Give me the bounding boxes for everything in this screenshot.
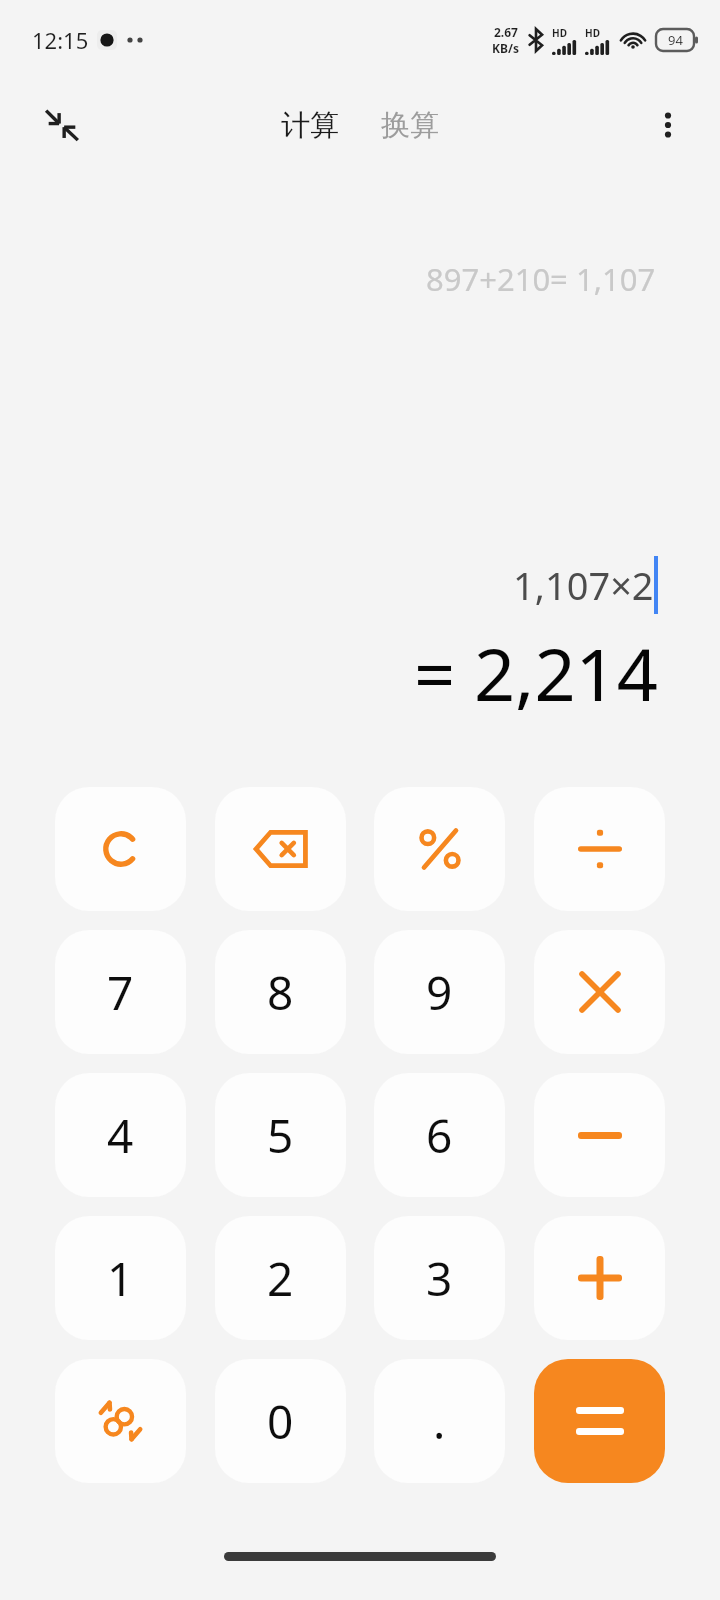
- button[interactable]: 2: [215, 1216, 346, 1340]
- button[interactable]: 3: [374, 1216, 505, 1340]
- button[interactable]: .: [374, 1359, 505, 1483]
- staticText: KB/s: [492, 40, 519, 56]
- button[interactable]: 0: [215, 1359, 346, 1483]
- button[interactable]: Clear: [55, 787, 186, 911]
- staticText: 1: [107, 1247, 134, 1310]
- staticText: 4: [107, 1104, 134, 1167]
- staticText: 5: [267, 1104, 294, 1167]
- staticText: 2.67: [494, 24, 518, 40]
- button[interactable]: Collapse: [30, 93, 94, 157]
- staticText: 9: [426, 961, 453, 1024]
- button[interactable]: 8: [215, 930, 346, 1054]
- button[interactable]: Backspace: [215, 787, 346, 911]
- button[interactable]: 5: [215, 1073, 346, 1197]
- staticText: HD: [585, 26, 600, 40]
- staticText: .: [433, 1390, 446, 1453]
- staticText: 换算: [381, 107, 439, 144]
- staticText: 94: [668, 31, 683, 49]
- button[interactable]: Minus: [534, 1073, 665, 1197]
- staticText: 3: [426, 1247, 453, 1310]
- button[interactable]: 6: [374, 1073, 505, 1197]
- button[interactable]: 7: [55, 930, 186, 1054]
- button[interactable]: More options: [640, 97, 696, 153]
- staticText: 0: [267, 1390, 294, 1453]
- staticText: 计算: [281, 107, 339, 144]
- button[interactable]: 1: [55, 1216, 186, 1340]
- button[interactable]: Divide: [534, 787, 665, 911]
- button[interactable]: Plus: [534, 1216, 665, 1340]
- button[interactable]: Multiply: [534, 930, 665, 1054]
- button[interactable]: 4: [55, 1073, 186, 1197]
- staticText: 8: [267, 961, 294, 1024]
- button[interactable]: 9: [374, 930, 505, 1054]
- staticText: 2: [267, 1247, 294, 1310]
- staticText: 1,107×2: [513, 559, 654, 611]
- staticText: 7: [107, 961, 134, 1024]
- button[interactable]: 换算: [373, 97, 447, 154]
- button[interactable]: Equals: [534, 1359, 665, 1483]
- staticText: HD: [552, 26, 567, 40]
- staticText: 6: [426, 1104, 453, 1167]
- button[interactable]: Scientific: [55, 1359, 186, 1483]
- button[interactable]: 计算: [273, 97, 347, 154]
- staticText: 12:15: [32, 25, 89, 55]
- staticText: = 2,214: [414, 624, 658, 722]
- staticText: 897+210= 1,107: [426, 258, 656, 300]
- button[interactable]: Percent: [374, 787, 505, 911]
